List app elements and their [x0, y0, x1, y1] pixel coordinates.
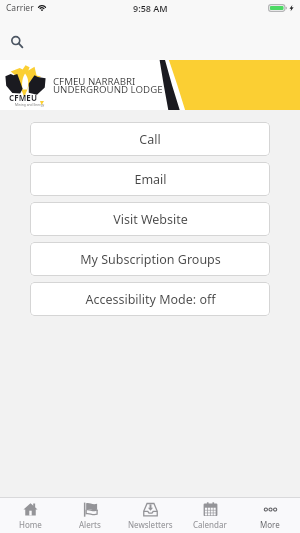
button[interactable]: My Subscription Groups: [30, 242, 270, 276]
staticText: Mining and Energy: [15, 102, 45, 106]
staticText: CFMEU NARRABRI UNDERGROUND LODGE: [53, 75, 163, 96]
button[interactable]: Calendar: [180, 498, 240, 533]
button[interactable]: Newsletters: [120, 498, 180, 533]
staticText: Newsletters: [128, 519, 173, 530]
button[interactable]: Accessibility Mode: off: [30, 282, 270, 316]
staticText: My Subscription Groups: [80, 251, 221, 268]
button[interactable]: Visit Website: [30, 202, 270, 236]
button[interactable]: Alerts: [60, 498, 120, 533]
button[interactable]: Call: [30, 122, 270, 156]
button[interactable]: Search: [2, 27, 31, 56]
staticText: Alerts: [79, 519, 101, 530]
button[interactable]: Home: [0, 498, 60, 533]
staticText: More: [260, 519, 280, 530]
staticText: 9:58 AM: [133, 2, 168, 14]
button[interactable]: More: [240, 498, 300, 533]
staticText: Carrier: [6, 2, 34, 14]
staticText: Email: [134, 171, 167, 188]
staticText: CFMEU: [9, 92, 38, 103]
staticText: Home: [19, 519, 42, 530]
staticText: Visit Website: [113, 211, 188, 228]
staticText: Calendar: [193, 519, 227, 530]
staticText: Call: [139, 131, 161, 148]
staticText: Accessibility Mode: off: [85, 291, 216, 308]
button[interactable]: Email: [30, 162, 270, 196]
